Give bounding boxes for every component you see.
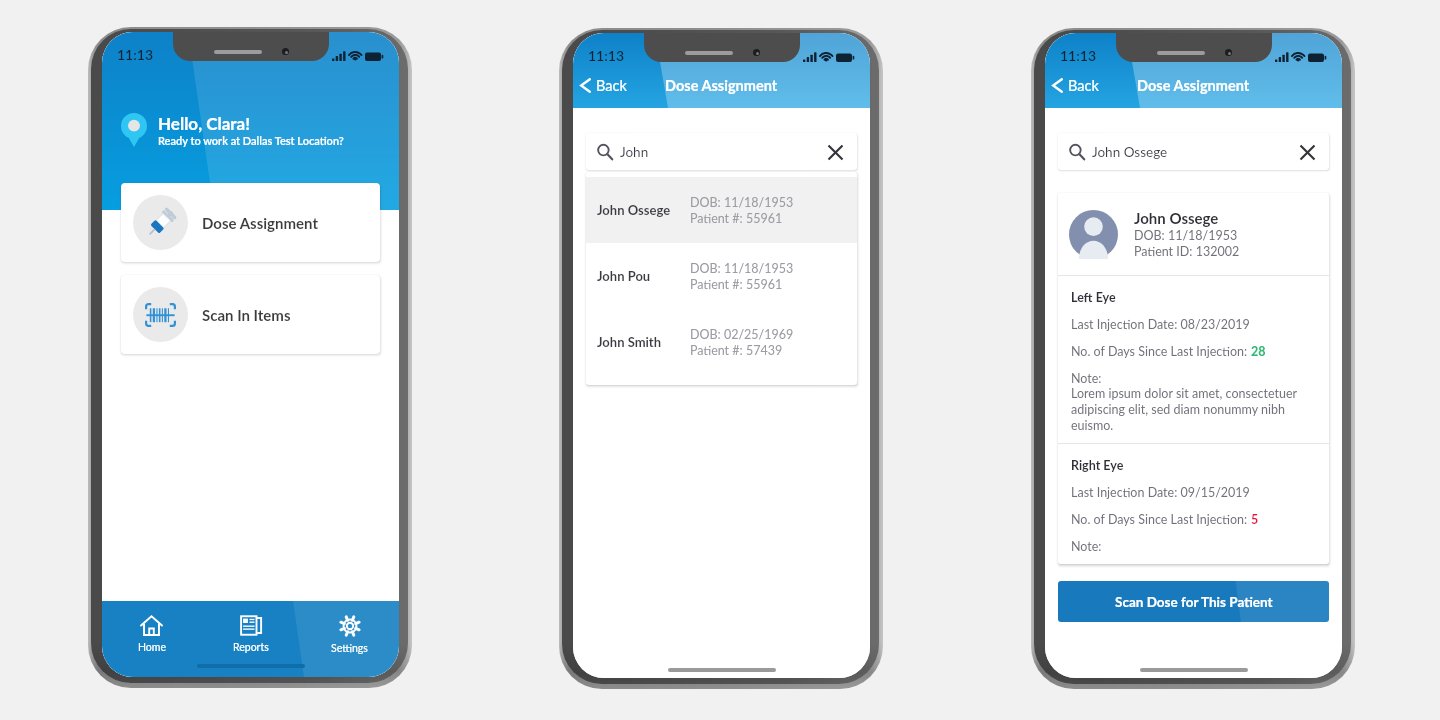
button[interactable]: Home <box>102 615 201 654</box>
staticText: 5 <box>1251 512 1259 527</box>
button[interactable]: Settings <box>300 615 399 655</box>
button[interactable]: John Ossege <box>586 177 857 243</box>
staticText: 11:13 <box>588 47 625 62</box>
staticText: Patient #: 55961 <box>690 277 783 292</box>
staticText: 11:13 <box>117 46 154 61</box>
staticText: No. of Days Since Last Injection: <box>1071 344 1251 359</box>
staticText: No. of Days Since Last Injection: <box>1071 512 1251 527</box>
staticText: John Smith <box>597 334 690 350</box>
staticText: 11:13 <box>1060 47 1097 62</box>
button[interactable]: Dose Assignment <box>121 183 380 262</box>
button[interactable]: Scan Dose for This Patient <box>1058 581 1329 622</box>
button[interactable]: Clear search <box>1296 141 1318 163</box>
button[interactable]: John Pou <box>586 243 857 309</box>
staticText: Patient #: 57439 <box>690 343 783 358</box>
staticText: Settings <box>331 642 368 655</box>
staticText: Scan Dose for This Patient <box>1115 594 1273 610</box>
button[interactable]: Clear search <box>824 141 846 163</box>
button[interactable]: John Smith <box>586 309 857 375</box>
staticText: John Pou <box>597 268 690 284</box>
button[interactable]: Reports <box>201 615 300 654</box>
staticText: Patient ID: 132002 <box>1134 244 1240 259</box>
staticText: Lorem ipsum dolor sit amet, consectetuer… <box>1071 386 1298 433</box>
button[interactable]: Back <box>1048 72 1103 99</box>
button[interactable]: John Ossege <box>1058 133 1329 170</box>
staticText: Right Eye <box>1071 458 1124 473</box>
staticText: DOB: 11/18/1953 <box>690 195 794 210</box>
staticText: Reports <box>233 641 269 654</box>
staticText: DOB: 11/18/1953 <box>1134 228 1238 243</box>
staticText: John Ossege <box>1092 144 1168 160</box>
staticText: Ready to work at Dallas Test Location? <box>158 134 344 147</box>
staticText: Patient #: 55961 <box>690 211 783 226</box>
staticText: DOB: 02/25/1969 <box>690 327 794 342</box>
button[interactable]: John <box>586 133 857 170</box>
staticText: Back <box>1068 77 1099 94</box>
staticText: Note: <box>1071 539 1102 554</box>
staticText: Left Eye <box>1071 290 1116 305</box>
staticText: Note: <box>1071 371 1102 386</box>
staticText: Dose Assignment <box>202 214 318 232</box>
staticText: Dose Assignment <box>665 77 778 94</box>
staticText: 28 <box>1251 344 1266 359</box>
staticText: Dose Assignment <box>1137 77 1250 94</box>
staticText: Hello, Clara! <box>158 113 250 133</box>
button[interactable]: Scan In Items <box>121 275 380 354</box>
staticText: Home <box>138 641 166 654</box>
staticText: Last Injection Date: 09/15/2019 <box>1071 485 1250 500</box>
staticText: Back <box>596 77 627 94</box>
staticText: Last Injection Date: 08/23/2019 <box>1071 317 1250 332</box>
button[interactable]: Back <box>576 72 631 99</box>
staticText: John Ossege <box>1134 209 1219 227</box>
staticText: DOB: 11/18/1953 <box>690 261 794 276</box>
staticText: John <box>620 144 649 160</box>
staticText: John Ossege <box>597 202 690 218</box>
staticText: Scan In Items <box>202 306 291 324</box>
